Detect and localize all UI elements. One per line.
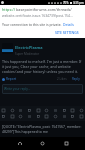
button[interactable]: Editor tool xyxy=(70,108,75,113)
staticText: basepointforums.com/threads/ xyxy=(16,7,72,12)
button[interactable]: Editor tool xyxy=(79,108,84,113)
button[interactable]: Editor tool xyxy=(62,108,67,113)
button[interactable]: Editor tool xyxy=(53,108,58,113)
button[interactable]: 2 Likes xyxy=(56,77,68,81)
button[interactable]: Notification xyxy=(1,1,4,4)
staticText: 3:35 pm xyxy=(73,1,84,5)
button[interactable]: Editor tool xyxy=(18,114,23,119)
button[interactable]: Editor tool xyxy=(79,114,84,119)
staticText: ElectricPlasma xyxy=(15,45,43,50)
staticText: SITE SETTINGS xyxy=(55,30,79,35)
staticText: 70% xyxy=(63,1,69,5)
button[interactable]: Editor tool xyxy=(53,114,58,119)
staticText: https:// xyxy=(2,7,16,12)
button[interactable]: Editor tool xyxy=(36,114,41,119)
button[interactable]: Editor tool xyxy=(1,114,6,119)
button[interactable]: Editor tool xyxy=(44,108,49,113)
button[interactable]: Editor tool xyxy=(10,108,15,113)
staticText: website-certificate-issue.1634739/post-1… xyxy=(2,13,73,18)
button[interactable]: Editor tool xyxy=(36,108,41,113)
button[interactable]: Report xyxy=(2,77,17,81)
button[interactable]: Editor tool xyxy=(44,114,49,119)
button[interactable]: Editor tool xyxy=(27,108,32,113)
staticText: Reply xyxy=(72,77,80,81)
staticText: [QUOTE="ElectricPlasma, post: 1541567, m… xyxy=(2,124,83,134)
button[interactable]: SITE SETTINGS xyxy=(51,29,83,36)
staticText: Super Moderator xyxy=(15,52,40,56)
button[interactable]: Recents xyxy=(62,139,71,148)
button[interactable]: Editor tool xyxy=(1,108,6,113)
button[interactable]: Home xyxy=(38,139,47,148)
button[interactable]: Editor tool xyxy=(10,114,15,119)
button[interactable]: Editor tool xyxy=(62,114,67,119)
button[interactable]: Editor tool xyxy=(27,114,32,119)
staticText: Details xyxy=(63,22,74,27)
staticText: Write your reply... xyxy=(4,87,31,91)
button[interactable]: Write your reply... xyxy=(2,84,83,94)
staticText: Report xyxy=(6,77,17,81)
staticText: This happened to me/self. I'm just a mem… xyxy=(2,59,83,74)
staticText: 2 Likes xyxy=(57,77,67,81)
button[interactable]: Editor tool xyxy=(70,114,75,119)
button[interactable]: Reply xyxy=(71,77,81,81)
button[interactable]: Back xyxy=(15,139,24,148)
staticText: Your connection to this site is private. xyxy=(2,22,63,27)
button[interactable]: Editor tool xyxy=(18,108,23,113)
